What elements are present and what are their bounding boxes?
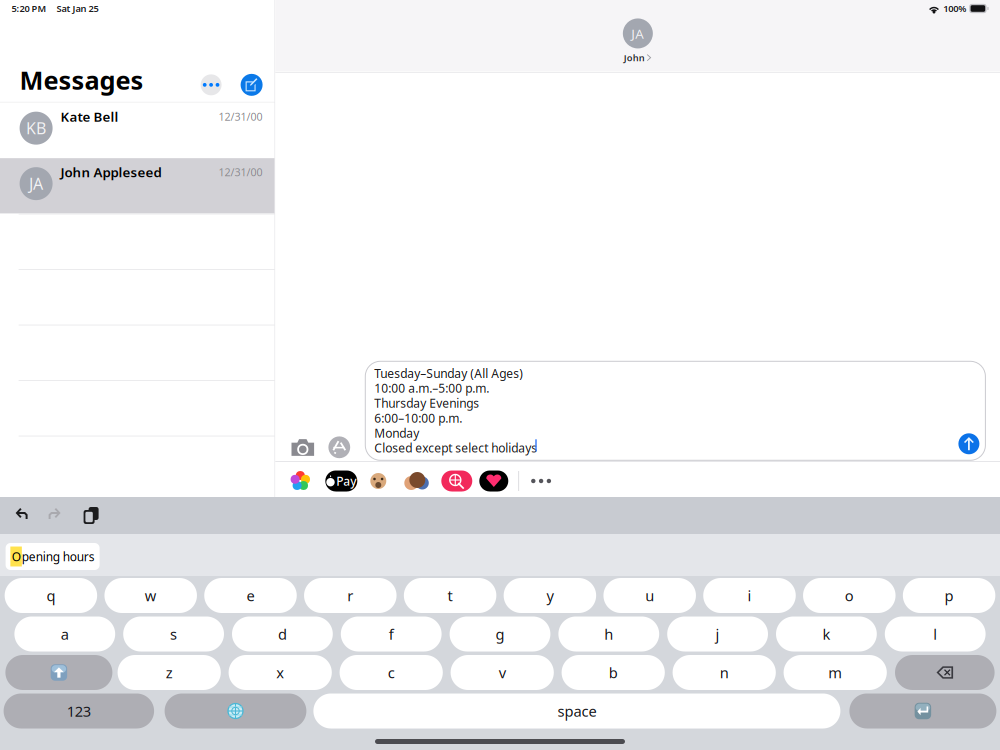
button[interactable]: e [204, 578, 297, 613]
staticText: John [624, 51, 645, 64]
button[interactable]: v [451, 655, 554, 690]
button[interactable]: More [201, 69, 222, 90]
button[interactable]: Digital Touch [479, 470, 508, 491]
button[interactable]: More apps [526, 470, 556, 491]
button[interactable]: w [104, 578, 197, 613]
button[interactable]: App Store [328, 434, 350, 460]
button[interactable]: c [340, 655, 443, 690]
staticText: pening hours [22, 548, 95, 564]
button[interactable]: Redo [49, 507, 65, 523]
button[interactable]: Shift [5, 655, 112, 690]
button[interactable]: 123 [4, 693, 154, 728]
staticText: n [720, 663, 729, 682]
staticText: o [845, 586, 854, 605]
button[interactable]: s [123, 616, 224, 651]
button[interactable]: x [229, 655, 332, 690]
button[interactable]: h [558, 616, 659, 651]
button[interactable]: z [118, 655, 221, 690]
staticText: b [609, 663, 618, 682]
button[interactable]: O [6, 543, 100, 570]
button[interactable]: m [784, 655, 887, 690]
staticText: JA [29, 173, 43, 194]
button[interactable]: Photos [289, 470, 311, 492]
button[interactable]: d [232, 616, 333, 651]
staticText: s [170, 624, 177, 644]
button[interactable]: JA [623, 18, 653, 64]
button[interactable]: Apple Pay [325, 470, 357, 491]
staticText: q [46, 586, 55, 605]
button[interactable]: Delete [895, 655, 995, 690]
button[interactable]: Switch keyboard [165, 693, 306, 728]
staticText: f [389, 624, 394, 644]
staticText: v [499, 663, 506, 682]
button[interactable]: b [562, 655, 665, 690]
button[interactable]: y [504, 578, 596, 613]
button[interactable]: p [903, 578, 995, 613]
button[interactable]: t [404, 578, 496, 613]
button[interactable]: Send [958, 433, 979, 454]
button[interactable]: KB [0, 103, 275, 158]
staticText: e [246, 586, 254, 605]
button[interactable]: Memoji Stickers [407, 472, 425, 489]
button[interactable]: a [14, 616, 115, 651]
button[interactable]: k [776, 616, 877, 651]
staticText: 100% [943, 2, 966, 15]
button[interactable]: i [703, 578, 796, 613]
staticText: John Appleseed [61, 163, 162, 181]
button[interactable]: n [673, 655, 776, 690]
staticText: 5:20 PM [12, 2, 47, 15]
staticText: z [166, 663, 173, 682]
button[interactable]: g [450, 616, 550, 651]
staticText: w [145, 586, 157, 605]
staticText: 12/31/00 [219, 165, 263, 179]
staticText: JA [631, 25, 644, 42]
staticText: c [388, 663, 395, 682]
staticText: t [448, 586, 453, 605]
button[interactable]: Camera [291, 434, 314, 460]
staticText: d [278, 624, 287, 644]
staticText: Kate Bell [61, 108, 119, 125]
staticText: space [557, 701, 596, 721]
staticText: Pay [336, 473, 356, 489]
button[interactable]: r [304, 578, 397, 613]
staticText: Sat Jan 25 [57, 2, 99, 15]
staticText: 12/31/00 [219, 109, 263, 124]
staticText: k [822, 624, 830, 644]
button[interactable]: Return [849, 693, 996, 728]
staticText: m [828, 663, 842, 682]
staticText: h [604, 624, 613, 644]
staticText: x [276, 663, 284, 682]
staticText: g [495, 624, 504, 644]
staticText: O [12, 548, 21, 564]
staticText: j [716, 624, 720, 644]
staticText: i [747, 586, 751, 605]
button[interactable]: o [803, 578, 895, 613]
button[interactable]: Memoji [370, 473, 386, 489]
button[interactable]: j [667, 616, 768, 651]
staticText: p [945, 586, 954, 605]
staticText: y [546, 586, 553, 605]
button[interactable]: Paste [82, 506, 100, 524]
button[interactable]: l [885, 616, 986, 651]
staticText: KB [26, 117, 46, 139]
staticText: a [61, 624, 69, 644]
button[interactable]: Compose [241, 69, 263, 91]
staticText: r [347, 586, 353, 605]
button[interactable]: u [603, 578, 696, 613]
staticText: Messages [20, 63, 144, 97]
staticText: 123 [67, 701, 91, 721]
staticText: u [645, 586, 654, 605]
staticText: Tuesday–Sunday (All Ages) 10:00 a.m.–5:0… [374, 365, 537, 456]
button[interactable]: Images [441, 470, 472, 491]
staticText: l [933, 624, 937, 644]
button[interactable]: space [313, 693, 840, 728]
button[interactable]: JA [0, 158, 275, 214]
button[interactable]: q [5, 578, 97, 613]
button[interactable]: Undo [16, 507, 32, 523]
button[interactable]: f [341, 616, 442, 651]
